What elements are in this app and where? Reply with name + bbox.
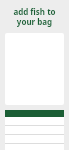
staticText: add fish to your bag — [10, 6, 59, 27]
